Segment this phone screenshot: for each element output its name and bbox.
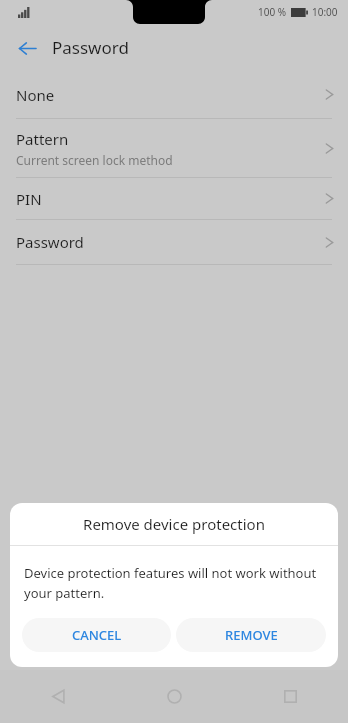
staticText: REMOVE <box>225 626 278 644</box>
staticText: 10:00 <box>312 5 338 19</box>
staticText: PIN <box>16 189 42 209</box>
staticText: Password <box>52 36 129 59</box>
staticText: Pattern <box>16 129 69 149</box>
staticText: Password <box>16 232 84 252</box>
staticText: 100 % <box>258 5 287 19</box>
staticText: Remove device protection <box>83 514 265 534</box>
button[interactable]: Pattern <box>0 119 348 177</box>
button[interactable]: None <box>0 71 348 118</box>
button[interactable]: Back <box>10 31 44 65</box>
staticText: Device protection features will not work… <box>24 564 324 602</box>
button[interactable]: PIN <box>0 178 348 219</box>
button[interactable]: CANCEL <box>22 618 171 652</box>
staticText: Current screen lock method <box>16 152 173 168</box>
button[interactable]: REMOVE <box>176 618 326 652</box>
staticText: None <box>16 85 55 105</box>
button[interactable]: Password <box>0 220 348 264</box>
staticText: CANCEL <box>72 626 122 644</box>
